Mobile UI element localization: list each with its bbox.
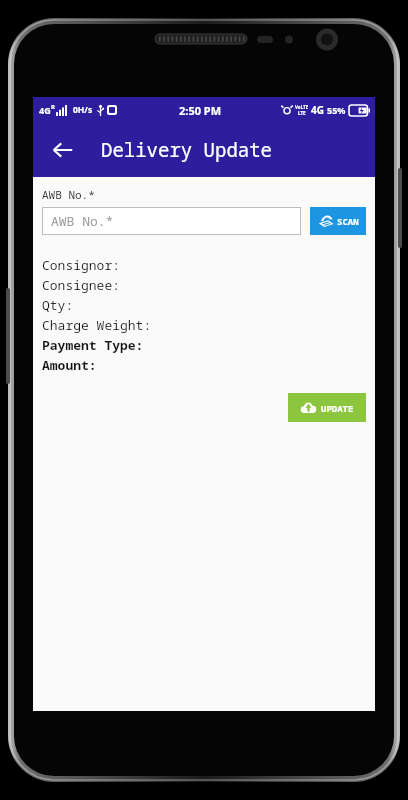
staticText: AWB No.* [51,212,114,230]
staticText: LTE [298,110,306,116]
button[interactable]: SCAN [310,207,366,235]
staticText: Qty: [42,296,74,314]
staticText: Payment Type: [42,336,144,354]
staticText: 4G [311,103,324,117]
button[interactable]: AWB No.* [42,207,301,235]
staticText: 0H/s [73,104,93,116]
staticText: R [51,103,55,111]
button[interactable]: Back [43,130,83,170]
button[interactable]: UPDATE [288,393,366,422]
staticText: 4G [39,104,51,116]
staticText: UPDATE [321,402,354,414]
staticText: 2:50 PM [179,103,222,118]
staticText: Delivery Update [101,137,273,163]
staticText: SCAN [337,215,359,227]
staticText: Charge Weight: [42,316,152,334]
staticText: Consignor: [42,256,121,274]
staticText: Consignee: [42,276,121,294]
staticText: Amount: [42,356,97,374]
staticText: 55% [327,104,346,116]
staticText: AWB No.* [42,187,95,202]
staticText: VoLTE [295,104,309,110]
